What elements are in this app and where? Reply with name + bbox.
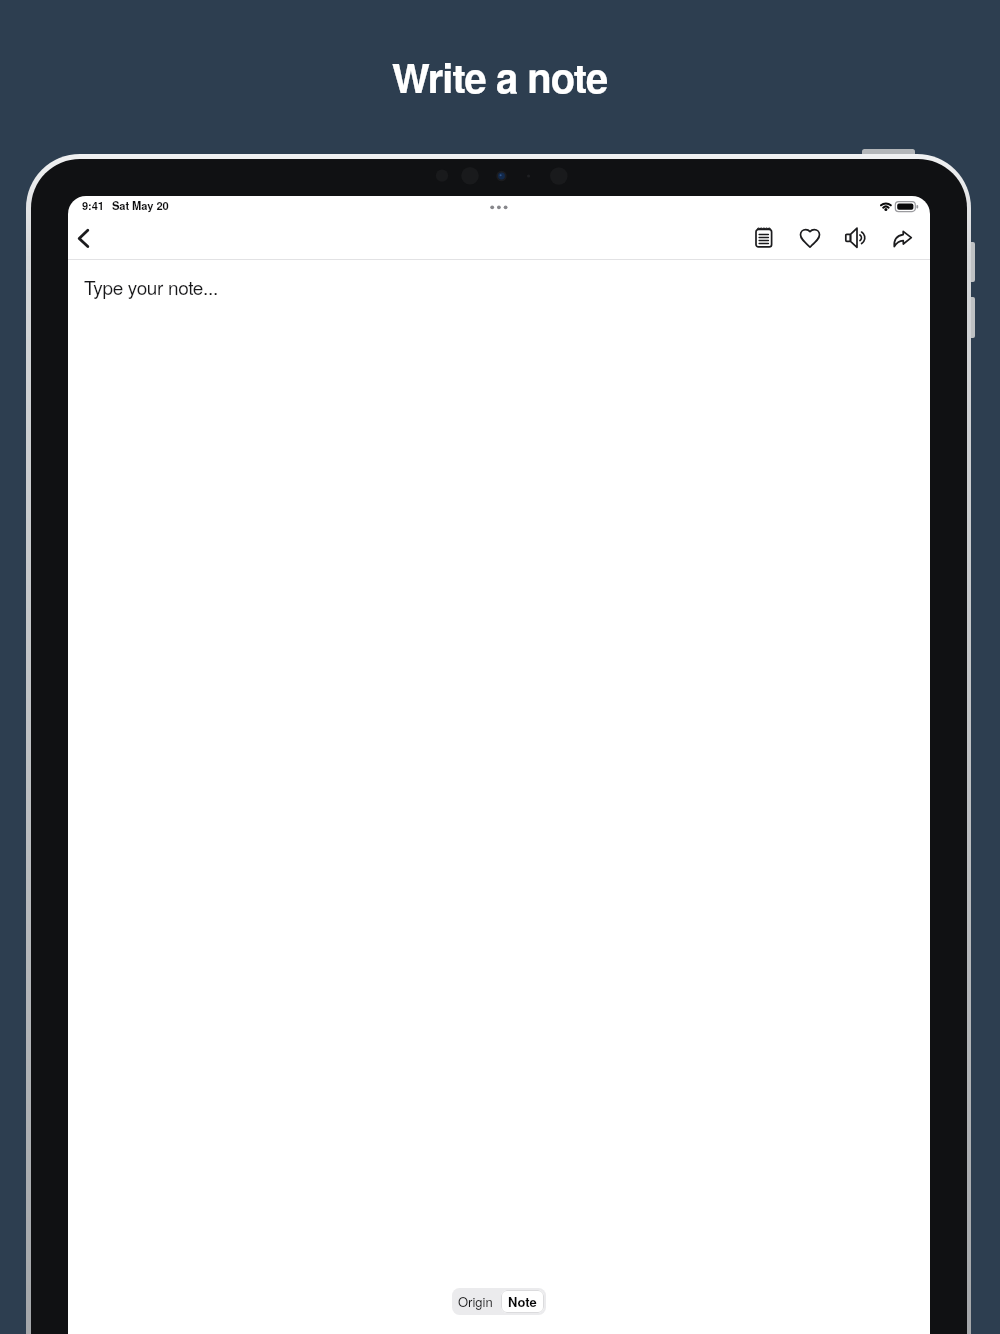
button[interactable] xyxy=(748,222,782,256)
button[interactable] xyxy=(839,222,873,256)
button[interactable] xyxy=(70,222,104,256)
staticText: Origin xyxy=(458,1292,493,1311)
staticText: Type your note... xyxy=(84,273,218,300)
button[interactable]: Note xyxy=(499,1288,546,1315)
button[interactable] xyxy=(886,222,920,256)
staticText: 9:41 xyxy=(82,197,104,213)
staticText: Note xyxy=(508,1292,537,1311)
button[interactable]: Origin xyxy=(452,1288,499,1315)
staticText: Sat May 20 xyxy=(112,197,169,213)
staticText: Write a note xyxy=(392,48,608,105)
button[interactable] xyxy=(794,222,828,256)
